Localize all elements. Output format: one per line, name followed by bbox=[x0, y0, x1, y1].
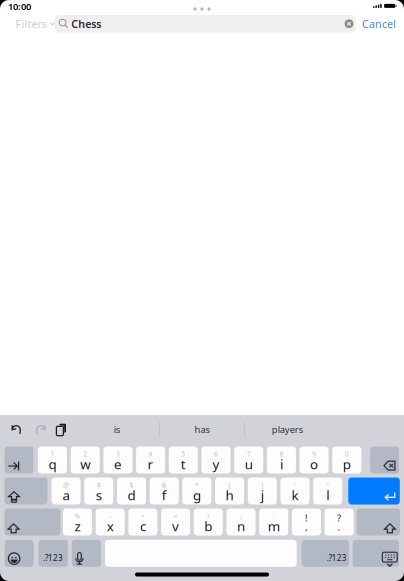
staticText: .?123 bbox=[327, 553, 347, 563]
button[interactable]: Clear text bbox=[341, 15, 357, 32]
button[interactable]: 0 bbox=[332, 446, 361, 473]
staticText: h bbox=[226, 486, 234, 504]
button[interactable]: Filters bbox=[15, 15, 49, 32]
staticText: .?123 bbox=[43, 553, 63, 563]
button[interactable]: ( bbox=[215, 477, 244, 504]
staticText: ) bbox=[261, 481, 263, 489]
staticText: % bbox=[74, 512, 80, 520]
button[interactable]: 4 bbox=[136, 446, 165, 473]
staticText: 8 bbox=[279, 450, 283, 458]
button[interactable]: Shift bbox=[4, 508, 60, 535]
button[interactable]: * bbox=[182, 477, 211, 504]
staticText: d bbox=[127, 486, 135, 504]
button[interactable]: ? bbox=[325, 508, 354, 535]
button[interactable]: is bbox=[74, 415, 159, 444]
staticText: is bbox=[114, 423, 120, 436]
button[interactable]: & bbox=[150, 477, 179, 504]
staticText: z bbox=[74, 517, 80, 535]
button[interactable]: ; bbox=[226, 508, 255, 535]
staticText: = bbox=[174, 512, 178, 520]
button[interactable]: Caps Lock bbox=[4, 477, 47, 504]
staticText: j bbox=[261, 486, 264, 504]
staticText: y bbox=[212, 455, 219, 473]
button[interactable]: ' bbox=[280, 477, 309, 504]
staticText: p bbox=[343, 455, 351, 473]
button[interactable]: Redo bbox=[32, 421, 48, 437]
button[interactable]: $ bbox=[117, 477, 146, 504]
button[interactable]: Undo bbox=[9, 421, 25, 437]
button[interactable]: players bbox=[245, 415, 330, 444]
staticText: . bbox=[338, 521, 341, 533]
staticText: * bbox=[195, 481, 199, 489]
staticText: Chess bbox=[71, 17, 101, 31]
button[interactable]: 8 bbox=[267, 446, 296, 473]
staticText: 10:00 bbox=[8, 0, 31, 13]
staticText: 7 bbox=[247, 450, 251, 458]
staticText: m bbox=[268, 517, 280, 535]
staticText: / bbox=[207, 512, 209, 520]
button[interactable]: Hide Keyboard bbox=[353, 540, 399, 567]
button[interactable]: Cancel bbox=[362, 15, 392, 32]
staticText: ( bbox=[229, 481, 231, 489]
staticText: 1 bbox=[50, 450, 54, 458]
staticText: - bbox=[109, 512, 111, 520]
button[interactable]: % bbox=[63, 508, 92, 535]
button[interactable]: / bbox=[194, 508, 223, 535]
button[interactable]: Paste bbox=[53, 421, 69, 437]
button[interactable]: 6 bbox=[201, 446, 230, 473]
staticText: b bbox=[204, 517, 212, 535]
staticText: , bbox=[305, 521, 308, 533]
button[interactable]: = bbox=[161, 508, 190, 535]
staticText: @ bbox=[63, 481, 69, 489]
staticText: & bbox=[162, 481, 167, 489]
staticText: q bbox=[48, 455, 56, 473]
staticText: w bbox=[80, 455, 90, 473]
staticText: ; bbox=[240, 512, 242, 520]
button[interactable]: @ bbox=[52, 477, 81, 504]
button[interactable]: has bbox=[159, 415, 245, 444]
staticText: g bbox=[193, 486, 201, 504]
staticText: t bbox=[181, 455, 186, 473]
button[interactable]: : bbox=[259, 508, 288, 535]
button[interactable]: Dictate bbox=[72, 540, 101, 567]
button[interactable]: 9 bbox=[300, 446, 329, 473]
staticText: 2 bbox=[83, 450, 87, 458]
button[interactable]: .?123 bbox=[302, 540, 349, 567]
button[interactable]: Emoji bbox=[5, 540, 34, 567]
staticText: Filters bbox=[15, 17, 46, 31]
staticText: has bbox=[194, 423, 209, 436]
button[interactable]: 5 bbox=[169, 446, 198, 473]
button[interactable]: + bbox=[128, 508, 157, 535]
staticText: l bbox=[326, 486, 329, 504]
staticText: 4 bbox=[149, 450, 153, 458]
button[interactable]: Shift bbox=[356, 508, 400, 535]
button[interactable]: ! bbox=[292, 508, 321, 535]
button[interactable]: Delete bbox=[370, 446, 399, 473]
staticText: + bbox=[141, 512, 145, 520]
staticText: o bbox=[310, 455, 318, 473]
staticText: k bbox=[291, 486, 298, 504]
button[interactable]: # bbox=[84, 477, 113, 504]
staticText: players bbox=[272, 423, 303, 436]
staticText: i bbox=[280, 455, 283, 473]
button[interactable]: - bbox=[96, 508, 125, 535]
staticText: ' bbox=[294, 481, 296, 489]
button[interactable]: " bbox=[313, 477, 342, 504]
staticText: c bbox=[140, 517, 146, 535]
button[interactable]: .?123 bbox=[38, 540, 68, 567]
button[interactable]: 7 bbox=[234, 446, 263, 473]
staticText: # bbox=[97, 481, 101, 489]
staticText: 5 bbox=[181, 450, 185, 458]
staticText: n bbox=[237, 517, 245, 535]
staticText: r bbox=[148, 455, 154, 473]
button[interactable]: 1 bbox=[38, 446, 67, 473]
staticText: ! bbox=[305, 512, 308, 524]
button[interactable]: 3 bbox=[103, 446, 132, 473]
staticText: u bbox=[245, 455, 253, 473]
button[interactable]: Return bbox=[348, 477, 400, 504]
button[interactable]: ) bbox=[248, 477, 277, 504]
button[interactable]: 2 bbox=[71, 446, 100, 473]
staticText: $ bbox=[129, 481, 133, 489]
button[interactable]: Tab bbox=[4, 446, 33, 473]
